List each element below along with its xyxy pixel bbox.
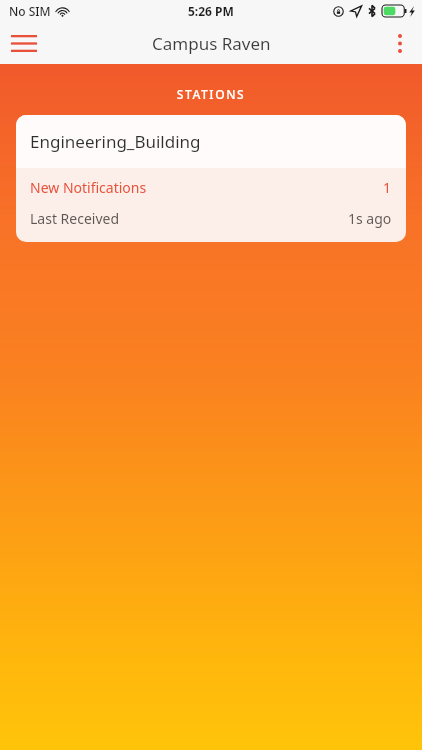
- button[interactable]: More options: [378, 22, 422, 64]
- staticText: STATIONS: [0, 86, 422, 102]
- button[interactable]: Engineering_Building: [16, 115, 406, 242]
- button[interactable]: Open navigation menu: [0, 22, 48, 64]
- staticText: New Notifications: [30, 178, 147, 197]
- staticText: 1: [383, 178, 392, 197]
- staticText: 5:26 PM: [188, 3, 234, 19]
- staticText: No SIM: [9, 3, 51, 19]
- staticText: Campus Raven: [152, 32, 271, 55]
- staticText: 1s ago: [348, 209, 392, 228]
- staticText: Last Received: [30, 209, 120, 228]
- staticText: Engineering_Building: [30, 130, 201, 153]
